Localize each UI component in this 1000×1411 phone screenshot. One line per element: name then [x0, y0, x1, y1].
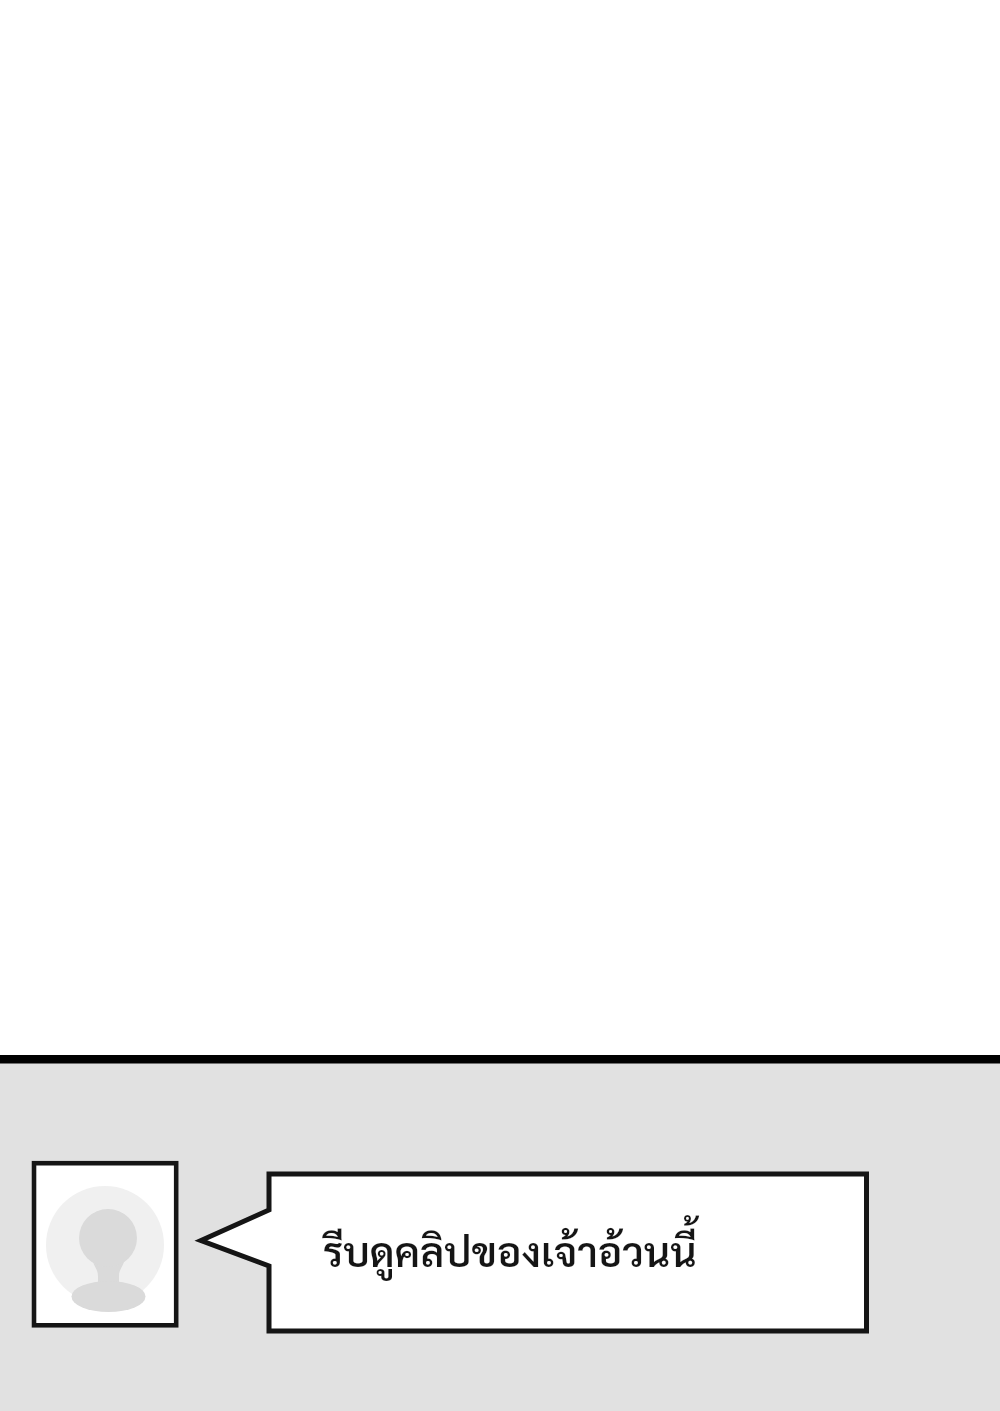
button[interactable]: รีบดูคลิปของเจ้าอ้วนนี้ — [199, 1172, 870, 1335]
staticText: รีบดูคลิปของเจ้าอ้วนนี้ — [323, 1223, 697, 1276]
button[interactable]: Speaker avatar — [32, 1161, 179, 1328]
